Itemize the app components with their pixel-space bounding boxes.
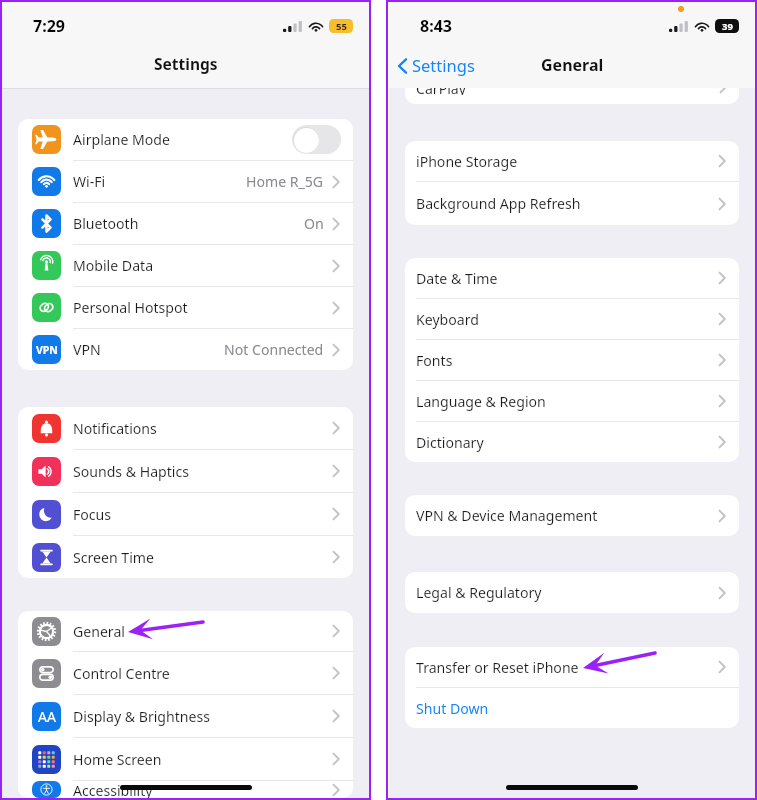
staticText: Airplane Mode — [73, 130, 170, 149]
button[interactable]: Shut Down — [405, 688, 739, 728]
button[interactable]: Home Screen — [18, 738, 353, 780]
staticText: 8:43 — [420, 15, 452, 37]
button[interactable]: Language & Region — [405, 381, 739, 421]
button[interactable]: Bluetooth — [18, 203, 353, 244]
staticText: Control Centre — [73, 664, 170, 683]
button[interactable]: Screen Time — [18, 536, 353, 578]
staticText: General — [73, 622, 125, 641]
staticText: Display & Brightness — [73, 707, 210, 726]
button[interactable]: CarPlay — [405, 88, 739, 104]
staticText: Date & Time — [416, 269, 498, 288]
staticText: iPhone Storage — [416, 152, 518, 171]
staticText: Legal & Regulatory — [416, 583, 542, 602]
button[interactable]: Focus — [18, 493, 353, 535]
staticText: Shut Down — [416, 699, 489, 718]
button[interactable]: VPN — [18, 329, 353, 370]
staticText: Sounds & Haptics — [73, 462, 190, 481]
button[interactable]: Dictionary — [405, 422, 739, 462]
staticText: Language & Region — [416, 392, 546, 411]
button[interactable]: AA — [18, 695, 353, 737]
staticText: 7:29 — [33, 15, 65, 37]
button[interactable]: Accessibility — [18, 781, 353, 798]
staticText: 39 — [722, 20, 733, 33]
button[interactable]: Keyboard — [405, 299, 739, 339]
button[interactable]: Personal Hotspot — [18, 287, 353, 328]
staticText: VPN — [73, 340, 101, 359]
staticText: Dictionary — [416, 433, 484, 452]
staticText: Bluetooth — [73, 214, 139, 233]
staticText: Home Screen — [73, 750, 162, 769]
button[interactable]: Airplane Mode — [18, 119, 353, 160]
button[interactable]: Settings — [397, 58, 475, 80]
staticText: Keyboard — [416, 310, 479, 329]
staticText: Background App Refresh — [416, 194, 581, 213]
button[interactable]: Date & Time — [405, 258, 739, 298]
staticText: Mobile Data — [73, 256, 154, 275]
button[interactable]: Sounds & Haptics — [18, 450, 353, 492]
button[interactable]: Wi-Fi — [18, 161, 353, 202]
staticText: Transfer or Reset iPhone — [416, 658, 579, 677]
staticText: General — [541, 54, 604, 76]
staticText: VPN — [36, 343, 58, 357]
staticText: 55 — [336, 20, 347, 33]
button[interactable]: Notifications — [18, 407, 353, 449]
staticText: Fonts — [416, 351, 453, 370]
staticText: VPN & Device Management — [416, 506, 598, 525]
staticText: Settings — [154, 53, 218, 74]
staticText: Home R_5G — [246, 172, 324, 191]
staticText: Notifications — [73, 419, 157, 438]
button[interactable]: Legal & Regulatory — [405, 572, 739, 613]
button[interactable]: Background App Refresh — [405, 182, 739, 225]
staticText: Accessibility — [73, 781, 153, 798]
button[interactable]: Airplane Mode toggle — [292, 125, 341, 154]
button[interactable]: Mobile Data — [18, 245, 353, 286]
button[interactable]: Fonts — [405, 340, 739, 380]
staticText: On — [304, 214, 324, 233]
staticText: Settings — [412, 54, 475, 76]
staticText: CarPlay — [416, 88, 466, 95]
button[interactable]: General — [18, 611, 353, 651]
button[interactable]: iPhone Storage — [405, 141, 739, 181]
staticText: Focus — [73, 505, 112, 524]
staticText: Screen Time — [73, 548, 154, 567]
button[interactable]: VPN & Device Management — [405, 495, 739, 536]
staticText: Not Connected — [224, 340, 324, 359]
button[interactable]: Control Centre — [18, 652, 353, 694]
staticText: Personal Hotspot — [73, 298, 188, 317]
staticText: Wi-Fi — [73, 172, 106, 191]
staticText: AA — [38, 707, 56, 726]
button[interactable]: Transfer or Reset iPhone — [405, 647, 739, 687]
